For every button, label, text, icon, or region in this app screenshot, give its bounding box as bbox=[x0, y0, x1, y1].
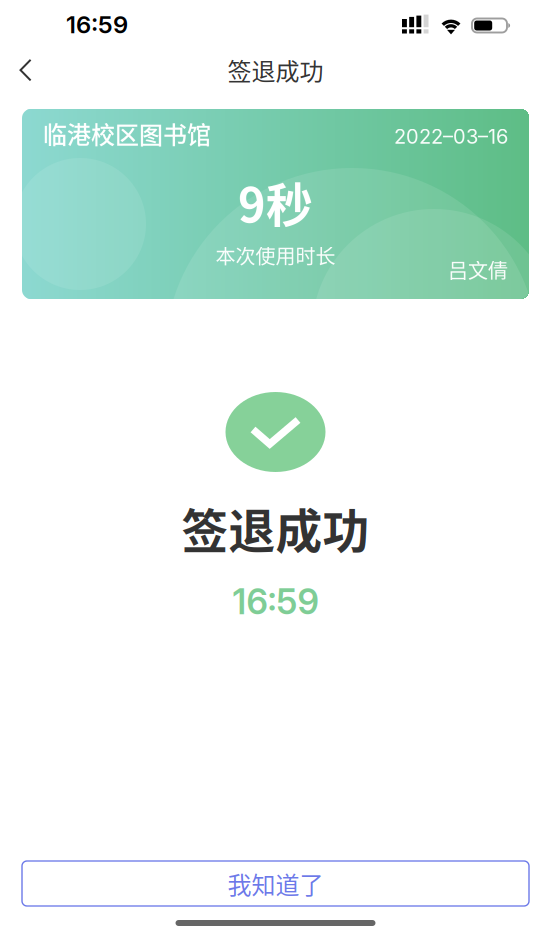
staticText: 2022–03–16 bbox=[394, 124, 508, 148]
button[interactable]: Back bbox=[0, 46, 49, 93]
staticText: 签退成功 bbox=[181, 494, 369, 562]
staticText: 本次使用时长 bbox=[215, 241, 335, 270]
staticText: 临港校区图书馆 bbox=[43, 116, 211, 151]
staticText: 签退成功 bbox=[227, 53, 323, 87]
staticText: 9秒 bbox=[238, 168, 313, 236]
staticText: 16:59 bbox=[232, 581, 318, 622]
staticText: 我知道了 bbox=[227, 866, 323, 901]
staticText: 16:59 bbox=[66, 10, 128, 39]
staticText: 吕文倩 bbox=[448, 255, 508, 284]
button[interactable]: 我知道了 bbox=[22, 861, 529, 906]
